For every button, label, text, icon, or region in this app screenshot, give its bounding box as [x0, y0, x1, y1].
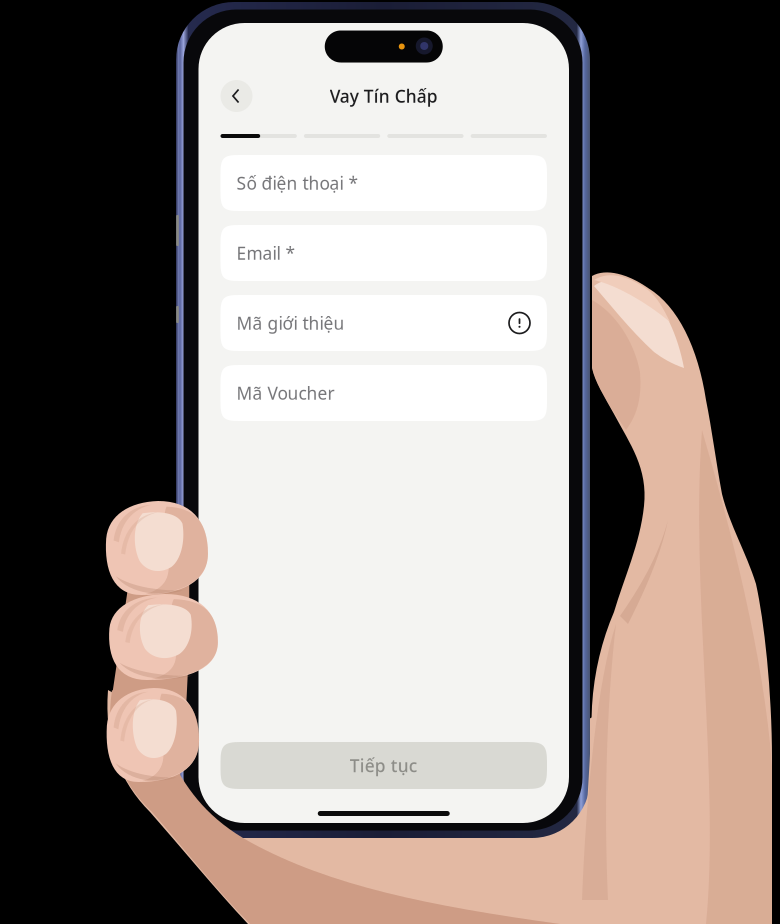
- staticText: Vay Tín Chấp: [330, 84, 438, 107]
- staticText: Số điện thoại *: [236, 171, 358, 194]
- staticText: Mã giới thiệu: [236, 311, 344, 334]
- staticText: Email *: [236, 241, 295, 264]
- staticText: Tiếp tục: [350, 754, 418, 777]
- button[interactable]: Mã Voucher: [220, 365, 547, 421]
- button[interactable]: Email *: [220, 225, 547, 281]
- button[interactable]: Tiếp tục: [220, 742, 547, 789]
- button[interactable]: Back: [220, 80, 252, 112]
- button[interactable]: Số điện thoại *: [220, 155, 547, 211]
- staticText: Mã Voucher: [236, 381, 334, 404]
- button[interactable]: Mã giới thiệu: [220, 295, 547, 351]
